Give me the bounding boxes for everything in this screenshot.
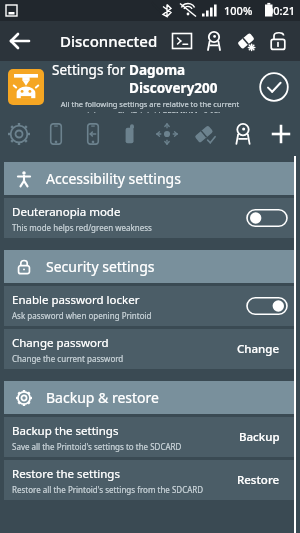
button[interactable]: Clear bbox=[230, 25, 262, 57]
staticText: Backup bbox=[239, 429, 280, 445]
staticText: 100% bbox=[224, 3, 253, 18]
staticText: Change password bbox=[12, 335, 109, 351]
button[interactable]: Backup bbox=[239, 429, 280, 445]
staticText: Restore the settings bbox=[12, 466, 120, 482]
staticText: Backup the settings bbox=[12, 423, 119, 439]
staticText: Settings for bbox=[52, 61, 129, 79]
button[interactable]: Unlock bbox=[262, 25, 294, 57]
button[interactable]: Tools bbox=[198, 25, 230, 57]
staticText: Restore bbox=[237, 472, 280, 488]
button[interactable]: Filament bbox=[111, 113, 148, 155]
staticText: Change bbox=[237, 341, 280, 357]
staticText: Backup & restore bbox=[46, 388, 159, 407]
button[interactable]: Settings for bbox=[8, 61, 292, 113]
button[interactable]: Restore bbox=[237, 472, 280, 488]
staticText: Change the current password bbox=[12, 353, 124, 364]
button[interactable]: Add bbox=[262, 113, 300, 155]
staticText: Security settings bbox=[46, 257, 155, 276]
button[interactable]: Settings bbox=[0, 113, 37, 155]
staticText: Enable password locker bbox=[12, 292, 140, 308]
button[interactable]: Backup the settings bbox=[12, 417, 288, 457]
button[interactable]: Move axis bbox=[148, 113, 186, 155]
button[interactable]: Terminal bbox=[166, 25, 198, 57]
staticText: Disconnected bbox=[60, 31, 158, 51]
staticText: Deuteranopia mode bbox=[12, 204, 121, 220]
staticText: Accessibility settings bbox=[46, 169, 181, 188]
button[interactable]: Confirm bbox=[256, 69, 292, 105]
staticText: This mode helps red/green weakness bbox=[12, 222, 152, 233]
button[interactable]: On bbox=[246, 296, 288, 316]
staticText: Restore all the Printoid's settings from… bbox=[12, 484, 204, 495]
button[interactable]: Back bbox=[0, 21, 40, 61]
button[interactable]: Phone bbox=[37, 113, 74, 155]
button[interactable]: Backup & restore bbox=[4, 381, 296, 414]
button[interactable]: Deuteranopia mode bbox=[12, 198, 288, 238]
staticText: Dagoma Discovery200 bbox=[129, 61, 248, 97]
button[interactable]: Clean bbox=[186, 113, 224, 155]
button[interactable]: Tools bbox=[224, 113, 262, 155]
staticText: Ask password when opening Printoid bbox=[12, 310, 152, 321]
button[interactable]: Restore the settings bbox=[12, 460, 288, 500]
staticText: Save all the Printoid's settings to the … bbox=[12, 441, 182, 452]
button[interactable]: Change bbox=[237, 341, 280, 357]
button[interactable]: Off bbox=[246, 208, 288, 228]
button[interactable]: Phone back bbox=[74, 113, 111, 155]
button[interactable]: Accessibility settings bbox=[4, 162, 296, 195]
button[interactable]: Enable password locker bbox=[12, 286, 288, 326]
button[interactable]: Change password bbox=[12, 329, 288, 369]
button[interactable]: Security settings bbox=[4, 250, 296, 283]
staticText: All the following settings are relative … bbox=[52, 99, 248, 113]
staticText: 00:21 bbox=[267, 3, 296, 18]
